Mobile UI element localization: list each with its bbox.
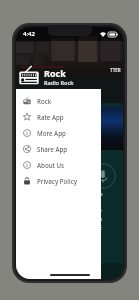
staticText: ome	[92, 191, 103, 198]
staticText: Rock	[37, 97, 52, 105]
staticText: n with	[88, 216, 102, 223]
staticText: 4:42	[23, 30, 35, 38]
staticText: About Us	[37, 161, 65, 169]
button[interactable]: Rock	[16, 93, 101, 109]
button[interactable]: More App	[16, 125, 101, 141]
staticText: ure yet	[86, 225, 102, 232]
button[interactable]: Share App	[16, 141, 101, 157]
staticText: Privacy Policy	[37, 177, 77, 185]
button[interactable]: Rate App	[16, 109, 101, 125]
staticText: TTER	[110, 67, 121, 73]
staticText: radio	[90, 207, 102, 214]
staticText: Rock	[44, 67, 66, 79]
button[interactable]: Microphone	[90, 163, 116, 189]
button[interactable]: Privacy Policy	[16, 173, 101, 189]
staticText: More App	[37, 129, 66, 137]
staticText: Share App	[37, 145, 68, 153]
button[interactable]: About Us	[16, 157, 101, 173]
staticText: Radio Rock	[44, 79, 74, 86]
staticText: Rate App	[37, 113, 64, 121]
